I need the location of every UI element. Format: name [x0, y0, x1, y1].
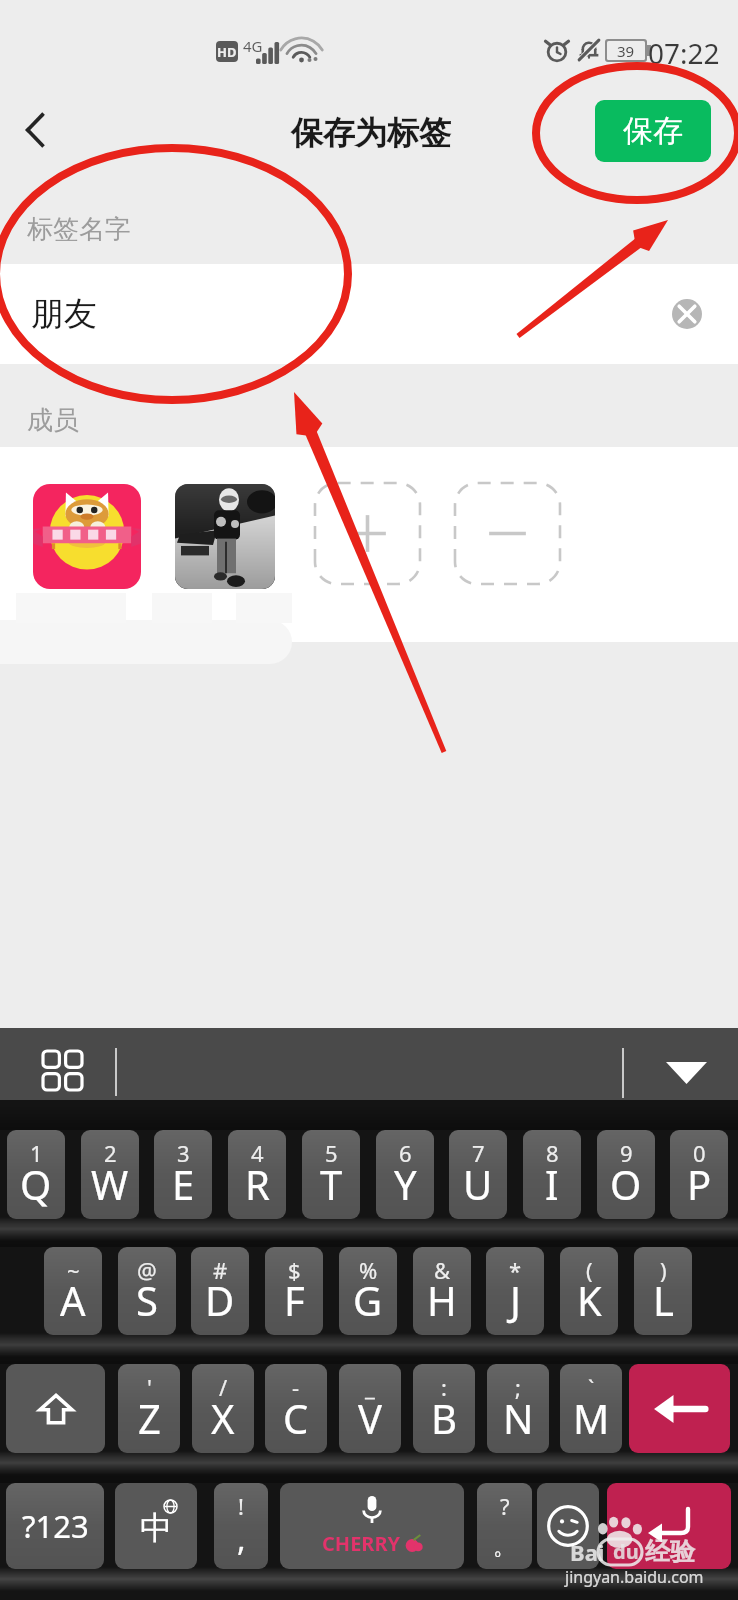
staticText: % — [359, 1255, 378, 1285]
button[interactable]: 空格 — [280, 1483, 464, 1569]
staticText: X — [211, 1391, 235, 1445]
button[interactable]: @ — [118, 1247, 176, 1335]
staticText: F — [284, 1273, 305, 1327]
staticText: * — [509, 1255, 522, 1285]
staticText: ~ — [67, 1255, 80, 1285]
button[interactable]: % — [339, 1247, 397, 1335]
staticText: 保存为标签 — [291, 113, 451, 153]
staticText: & — [434, 1255, 451, 1285]
staticText: 1 — [30, 1138, 43, 1168]
button[interactable]: 9 — [597, 1130, 655, 1219]
button[interactable]: Shift — [6, 1364, 105, 1453]
button[interactable]: 收起键盘 — [662, 1049, 710, 1097]
button[interactable]: 退格 — [629, 1364, 730, 1453]
button[interactable]: 返回 — [4, 99, 66, 161]
staticText: G — [353, 1273, 383, 1327]
staticText: Bai — [570, 1537, 605, 1567]
staticText: / — [219, 1372, 228, 1402]
button[interactable]: ' — [118, 1364, 180, 1453]
staticText: ' — [147, 1372, 152, 1402]
staticText: Q — [20, 1157, 52, 1211]
staticText: M — [573, 1391, 610, 1445]
staticText: J — [510, 1273, 521, 1327]
button[interactable]: $ — [265, 1247, 323, 1335]
staticText: CHERRY — [322, 1530, 401, 1557]
button[interactable]: 0 — [670, 1130, 728, 1219]
staticText: 保存 — [623, 112, 683, 150]
staticText: B — [431, 1391, 457, 1445]
staticText: H — [427, 1273, 457, 1327]
staticText: K — [577, 1273, 602, 1327]
button[interactable]: # — [191, 1247, 249, 1335]
button[interactable]: _ — [339, 1364, 401, 1453]
button[interactable]: ; — [487, 1364, 549, 1453]
staticText: @ — [137, 1255, 157, 1285]
button[interactable]: 清除 — [672, 299, 702, 329]
staticText: N — [503, 1391, 534, 1445]
button[interactable]: 4 — [228, 1130, 286, 1219]
button[interactable]: & — [413, 1247, 471, 1335]
button[interactable]: 7 — [449, 1130, 507, 1219]
button[interactable]: ` — [560, 1364, 622, 1453]
staticText: L — [653, 1273, 674, 1327]
button[interactable]: 回车 — [607, 1483, 731, 1569]
staticText: ( — [586, 1255, 593, 1285]
button[interactable]: ~ — [44, 1247, 102, 1335]
staticText: # — [213, 1255, 228, 1285]
staticText: 4 — [251, 1138, 264, 1168]
staticText: , — [237, 1517, 246, 1561]
staticText: I — [545, 1157, 559, 1211]
button[interactable]: 5 — [302, 1130, 360, 1219]
button[interactable]: 表情 — [537, 1483, 599, 1569]
button[interactable]: : — [413, 1364, 475, 1453]
staticText: _ — [365, 1372, 375, 1402]
staticText: A — [60, 1273, 86, 1327]
staticText: 9 — [620, 1138, 633, 1168]
staticText: ; — [515, 1372, 521, 1402]
button[interactable]: / — [192, 1364, 254, 1453]
staticText: U — [463, 1157, 493, 1211]
staticText: 07:22 — [648, 34, 720, 72]
staticText: C — [283, 1391, 309, 1445]
button[interactable]: 键盘菜单 — [38, 1046, 86, 1094]
button[interactable]: 6 — [376, 1130, 434, 1219]
button[interactable]: 8 — [523, 1130, 581, 1219]
staticText: T — [320, 1157, 343, 1211]
staticText: V — [358, 1391, 382, 1445]
button[interactable]: 2 — [81, 1130, 139, 1219]
staticText: ) — [660, 1255, 667, 1285]
button[interactable]: * — [486, 1247, 544, 1335]
button[interactable] — [33, 484, 141, 589]
button[interactable]: ( — [560, 1247, 618, 1335]
button[interactable]: 1 — [7, 1130, 65, 1219]
staticText: jingyan.baidu.com — [565, 1566, 704, 1588]
staticText: 标签名字 — [27, 213, 131, 246]
staticText: S — [136, 1273, 158, 1327]
staticText: Y — [394, 1157, 417, 1211]
staticText: 8 — [546, 1138, 559, 1168]
staticText: W — [91, 1157, 129, 1211]
button[interactable]: 朋友 — [0, 264, 738, 364]
button[interactable]: 移除成员 — [455, 483, 560, 584]
staticText: ! — [238, 1491, 244, 1521]
button[interactable] — [175, 484, 275, 589]
button[interactable]: 添加成员 — [315, 483, 420, 584]
staticText: 0 — [693, 1138, 706, 1168]
staticText: 朋友 — [31, 293, 97, 335]
button[interactable]: 中 — [115, 1483, 197, 1569]
staticText: 7 — [472, 1138, 485, 1168]
staticText: du — [613, 1538, 639, 1565]
staticText: 6 — [399, 1138, 412, 1168]
button[interactable]: ! — [214, 1483, 268, 1569]
button[interactable]: 3 — [154, 1130, 212, 1219]
button[interactable]: ? — [477, 1483, 532, 1569]
button[interactable]: ?123 — [6, 1483, 104, 1569]
staticText: 中 — [140, 1508, 172, 1548]
button[interactable]: ) — [634, 1247, 692, 1335]
button[interactable]: - — [265, 1364, 327, 1453]
button[interactable]: 保存 — [595, 100, 711, 162]
staticText: ` — [588, 1372, 595, 1402]
staticText: D — [205, 1273, 235, 1327]
staticText: 5 — [325, 1138, 338, 1168]
staticText: 。 — [493, 1532, 516, 1561]
